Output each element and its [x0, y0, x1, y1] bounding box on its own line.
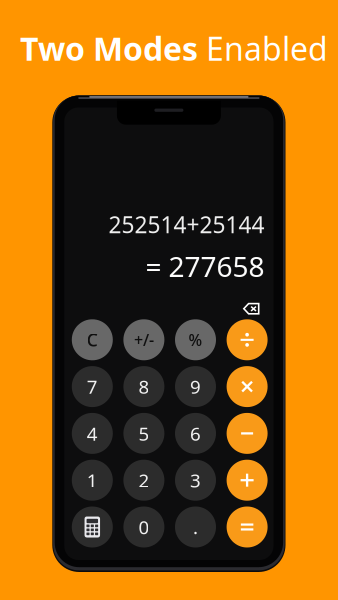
staticText: 8 [138, 374, 149, 399]
button[interactable]: 2 [123, 460, 164, 501]
button[interactable]: +/- [123, 319, 164, 360]
button[interactable]: 7 [72, 366, 113, 407]
button[interactable]: C [72, 319, 113, 360]
button[interactable]: Delete [243, 293, 264, 315]
staticText: 0 [138, 515, 149, 539]
staticText: 3 [190, 468, 201, 493]
staticText: 252514+25144 [108, 209, 264, 240]
staticText: 1 [87, 468, 98, 493]
staticText: Two Modes Enabled [20, 27, 328, 69]
button[interactable]: 5 [123, 413, 164, 454]
staticText: . [193, 515, 198, 539]
button[interactable]: 6 [175, 413, 216, 454]
button[interactable]: Subtract [227, 413, 268, 454]
staticText: 5 [138, 421, 149, 446]
staticText: 4 [87, 421, 98, 446]
button[interactable]: Equals [227, 506, 268, 547]
button[interactable]: 0 [123, 506, 164, 547]
staticText: 9 [190, 374, 201, 399]
button[interactable]: . [175, 506, 216, 547]
button[interactable]: 4 [72, 413, 113, 454]
button[interactable]: 3 [175, 460, 216, 501]
button[interactable]: 8 [123, 366, 164, 407]
button[interactable]: Multiply [227, 366, 268, 407]
staticText: +/- [134, 329, 154, 350]
staticText: = 277658 [145, 248, 264, 285]
button[interactable]: Add [227, 460, 268, 501]
button[interactable]: Switch mode [72, 506, 113, 547]
button[interactable]: % [175, 319, 216, 360]
staticText: % [188, 329, 202, 350]
staticText: 2 [138, 468, 149, 493]
button[interactable]: 9 [175, 366, 216, 407]
staticText: C [87, 328, 98, 351]
button[interactable]: Divide [227, 319, 268, 360]
staticText: 7 [87, 374, 98, 399]
button[interactable]: 1 [72, 460, 113, 501]
staticText: 6 [190, 421, 201, 446]
